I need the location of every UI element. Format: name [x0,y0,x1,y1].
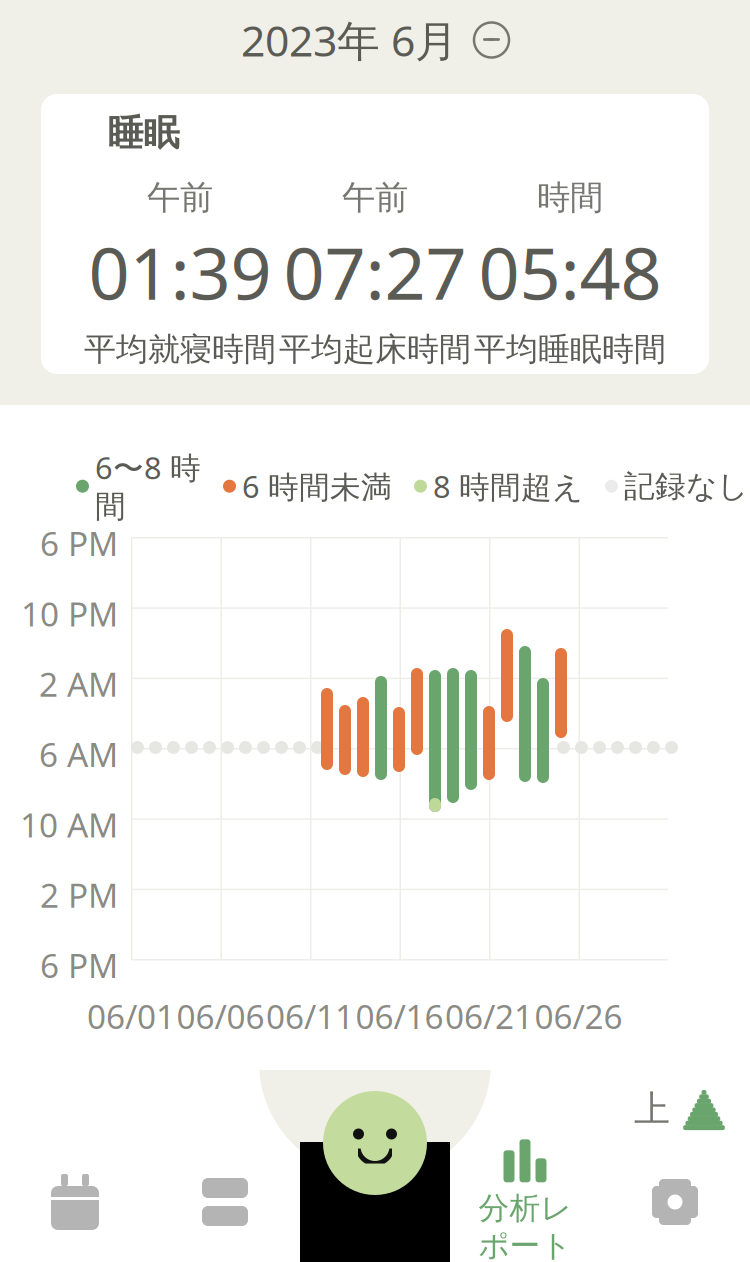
staticText: 10 AM [20,802,118,847]
staticText: 06/11 [266,994,354,1038]
staticText: 2023年 6月 [241,12,458,68]
staticText: 午前 [342,177,408,218]
staticText: 時間 [537,177,603,218]
staticText: 10 PM [21,591,118,636]
staticText: 2 AM [39,662,118,706]
staticText: 2 PM [40,873,118,917]
staticText: 06/06 [176,994,264,1038]
staticText: 05:48 [478,224,661,320]
staticText: 06/26 [534,994,622,1038]
staticText: 6 時間未満 [242,466,392,506]
staticText: 午前 [147,177,213,218]
staticText: 分析レポート [478,1189,571,1262]
staticText: 6 AM [39,732,118,776]
button[interactable]: カレンダー [0,1142,150,1262]
button[interactable]: 2023年 6月 [205,10,545,70]
staticText: 06/16 [355,994,443,1038]
staticText: 6 PM [40,943,118,987]
button[interactable]: 設定 [600,1142,750,1262]
staticText: 07:27 [283,224,466,320]
staticText: 平均就寝時間 [84,330,276,369]
staticText: 平均睡眠時間 [474,330,666,369]
staticText: 平均起床時間 [279,330,471,369]
staticText: 06/01 [87,994,175,1038]
staticText: 06/21 [445,994,533,1038]
staticText: 睡眠 [107,111,179,155]
staticText: 記録なし [624,467,748,505]
staticText: 01:39 [88,224,271,320]
staticText: 6 PM [40,521,118,565]
button[interactable]: リスト [150,1142,300,1262]
staticText: 6〜8 時間 [95,447,201,525]
staticText: 上 [634,1087,670,1131]
button[interactable]: 分析レポート [450,1142,600,1262]
staticText: 8 時間超え [433,466,583,506]
